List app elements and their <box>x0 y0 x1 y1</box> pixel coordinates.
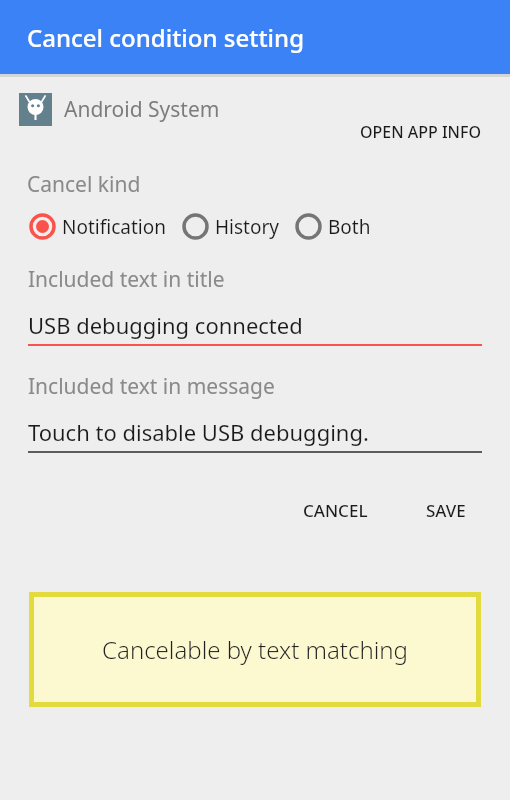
staticText: Notification <box>62 214 166 240</box>
other: Android System icon <box>19 93 52 126</box>
staticText: Android System <box>64 95 220 124</box>
staticText: CANCEL <box>303 499 368 522</box>
staticText: Cancel kind <box>27 170 141 199</box>
staticText: Both <box>328 214 371 240</box>
button[interactable]: OPEN APP INFO <box>352 117 490 147</box>
button[interactable]: Touch to disable USB debugging. <box>28 417 482 453</box>
button[interactable]: Notification <box>29 213 168 240</box>
staticText: Cancel condition setting <box>27 21 305 54</box>
button[interactable]: SAVE <box>420 491 472 530</box>
staticText: Touch to disable USB debugging. <box>28 417 369 447</box>
button[interactable]: History <box>182 213 281 240</box>
staticText: SAVE <box>426 499 466 522</box>
button[interactable]: USB debugging connected <box>28 310 482 346</box>
staticText: USB debugging connected <box>28 310 303 340</box>
staticText: Included text in title <box>28 265 225 294</box>
staticText: History <box>215 214 279 240</box>
button[interactable]: CANCEL <box>297 491 374 530</box>
button[interactable]: Both <box>295 213 373 240</box>
staticText: OPEN APP INFO <box>360 121 482 143</box>
staticText: Included text in message <box>28 372 275 401</box>
staticText: Cancelable by text matching <box>102 633 408 666</box>
